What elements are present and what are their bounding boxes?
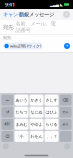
staticText: ☺	[5, 134, 9, 139]
button[interactable]: キャンセル	[0, 9, 28, 20]
button[interactable]: 、。?	[45, 131, 58, 142]
button[interactable]: 空白	[60, 107, 72, 118]
button[interactable]: Dictate	[64, 143, 70, 149]
button[interactable]: やゆよ	[29, 119, 43, 130]
button[interactable]: さしす	[45, 95, 58, 106]
button[interactable]: らりる	[45, 119, 58, 130]
staticText: 宛先:	[3, 35, 12, 40]
staticText: やゆよ	[30, 122, 42, 127]
button[interactable]: はひふ	[45, 107, 58, 118]
staticText: ゛小゜	[15, 134, 27, 139]
button[interactable]: 改行	[60, 119, 72, 130]
staticText: 改行	[63, 123, 69, 126]
button[interactable]: まみむ	[14, 119, 28, 130]
button[interactable]: なにぬ	[29, 107, 43, 118]
button[interactable]: Add contact	[64, 42, 70, 50]
staticText: 9:41	[5, 1, 15, 8]
staticText: キャンセル	[3, 11, 28, 18]
button[interactable]: ゛小゜	[14, 131, 28, 142]
button[interactable]: たちつ	[14, 107, 28, 118]
staticText: +	[65, 42, 68, 50]
staticText: 空白	[63, 111, 69, 114]
button[interactable]: 宛先:	[0, 20, 73, 34]
button[interactable]: ☺	[1, 131, 13, 142]
button[interactable]: ABC	[1, 119, 13, 130]
staticText: あいう	[15, 98, 27, 102]
button[interactable]: Switch keyboard	[3, 143, 9, 149]
staticText: かきく	[30, 98, 42, 102]
button[interactable]: ⌫	[60, 95, 72, 106]
staticText: ←	[6, 98, 9, 102]
staticText: wiku2785 (ウィク)	[10, 43, 41, 49]
button[interactable]: かきく	[29, 95, 43, 106]
staticText: 名前、メール、電話番号	[16, 20, 56, 33]
button[interactable]: あいう	[14, 95, 28, 106]
button[interactable]: wiku2785 (ウィク)	[3, 42, 42, 49]
staticText: ABC	[4, 122, 10, 126]
staticText: わをん	[30, 134, 42, 139]
staticText: 新規メッセージ	[19, 11, 54, 18]
staticText: まみむ	[15, 122, 27, 127]
staticText: ↺	[6, 110, 9, 114]
staticText: 宛先:	[3, 23, 14, 31]
staticText: ⌫	[63, 98, 69, 102]
button[interactable]	[60, 131, 72, 142]
button[interactable]: わをん	[29, 131, 43, 142]
button[interactable]: ←	[1, 95, 13, 106]
button[interactable]: ↺	[1, 107, 13, 118]
staticText: ↑	[65, 12, 68, 17]
staticText: ◣	[60, 2, 63, 7]
button[interactable]: Send	[63, 11, 73, 18]
staticText: 、。?	[46, 134, 56, 139]
staticText: ▂▃▄	[50, 2, 59, 7]
staticText: さしす	[45, 98, 57, 102]
staticText: なにぬ	[30, 110, 42, 115]
staticText: らりる	[45, 122, 57, 127]
staticText: はひふ	[45, 110, 57, 115]
staticText: たちつ	[15, 110, 27, 115]
